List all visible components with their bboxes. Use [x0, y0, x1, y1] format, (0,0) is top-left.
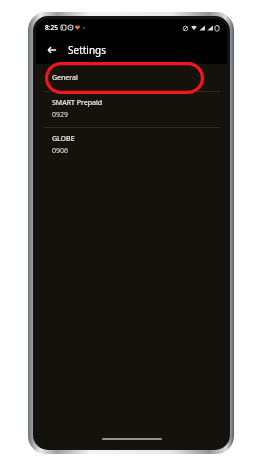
- button[interactable]: SMART Prepaid: [36, 92, 227, 127]
- button[interactable]: General: [36, 64, 227, 91]
- staticText: GLOBE: [52, 134, 75, 144]
- button[interactable]: Back: [42, 40, 62, 60]
- staticText: General: [52, 73, 78, 83]
- staticText: 0906: [52, 146, 69, 156]
- staticText: 0929: [52, 110, 69, 120]
- button[interactable]: GLOBE: [36, 128, 227, 163]
- staticText: 8:25: [45, 23, 58, 32]
- staticText: SMART Prepaid: [52, 98, 103, 108]
- staticText: Settings: [68, 43, 107, 57]
